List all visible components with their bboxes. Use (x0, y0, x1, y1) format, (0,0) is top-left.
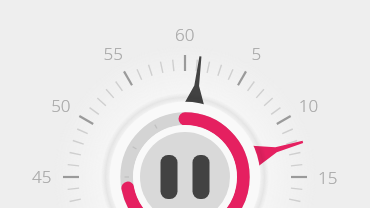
button[interactable]: Pause timer (0, 0, 370, 208)
